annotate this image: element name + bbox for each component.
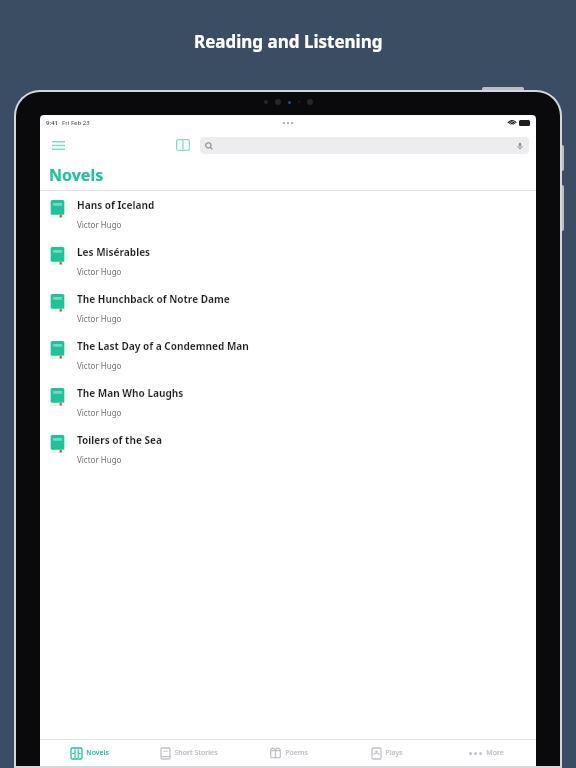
staticText: Toilers of the Sea (77, 433, 162, 447)
button[interactable]: Hans of Iceland (40, 191, 536, 238)
staticText: Victor Hugo (77, 454, 122, 465)
button[interactable] (200, 137, 529, 154)
button[interactable]: Novels (40, 740, 140, 766)
staticText: The Hunchback of Notre Dame (77, 292, 230, 306)
staticText: Victor Hugo (77, 266, 122, 277)
staticText: Victor Hugo (77, 407, 122, 418)
staticText: Short Stories (174, 748, 218, 758)
button[interactable]: Plays (338, 740, 437, 766)
button[interactable]: Menu (47, 134, 69, 156)
button[interactable]: The Last Day of a Condemned Man (40, 332, 536, 379)
button[interactable]: The Hunchback of Notre Dame (40, 285, 536, 332)
button[interactable]: Toilers of the Sea (40, 426, 536, 473)
button[interactable]: Les Misérables (40, 238, 536, 285)
button[interactable]: Short Stories (140, 740, 239, 766)
staticText: Fri Feb 23 (62, 119, 90, 127)
staticText: Les Misérables (77, 245, 151, 259)
staticText: Reading and Listening (194, 30, 383, 53)
button[interactable]: The Man Who Laughs (40, 379, 536, 426)
staticText: Novels (49, 164, 104, 186)
staticText: The Man Who Laughs (77, 386, 184, 400)
staticText: Victor Hugo (77, 313, 122, 324)
staticText: Victor Hugo (77, 219, 122, 230)
staticText: The Last Day of a Condemned Man (77, 339, 249, 353)
staticText: Novels (86, 748, 109, 758)
staticText: 9:41 (46, 119, 58, 127)
staticText: Victor Hugo (77, 360, 122, 371)
button[interactable]: More (437, 740, 536, 766)
staticText: Hans of Iceland (77, 198, 155, 212)
button[interactable]: Poems (239, 740, 338, 766)
button[interactable]: Library (172, 134, 194, 156)
staticText: Poems (285, 748, 308, 758)
staticText: Plays (385, 748, 403, 758)
staticText: More (486, 748, 504, 758)
